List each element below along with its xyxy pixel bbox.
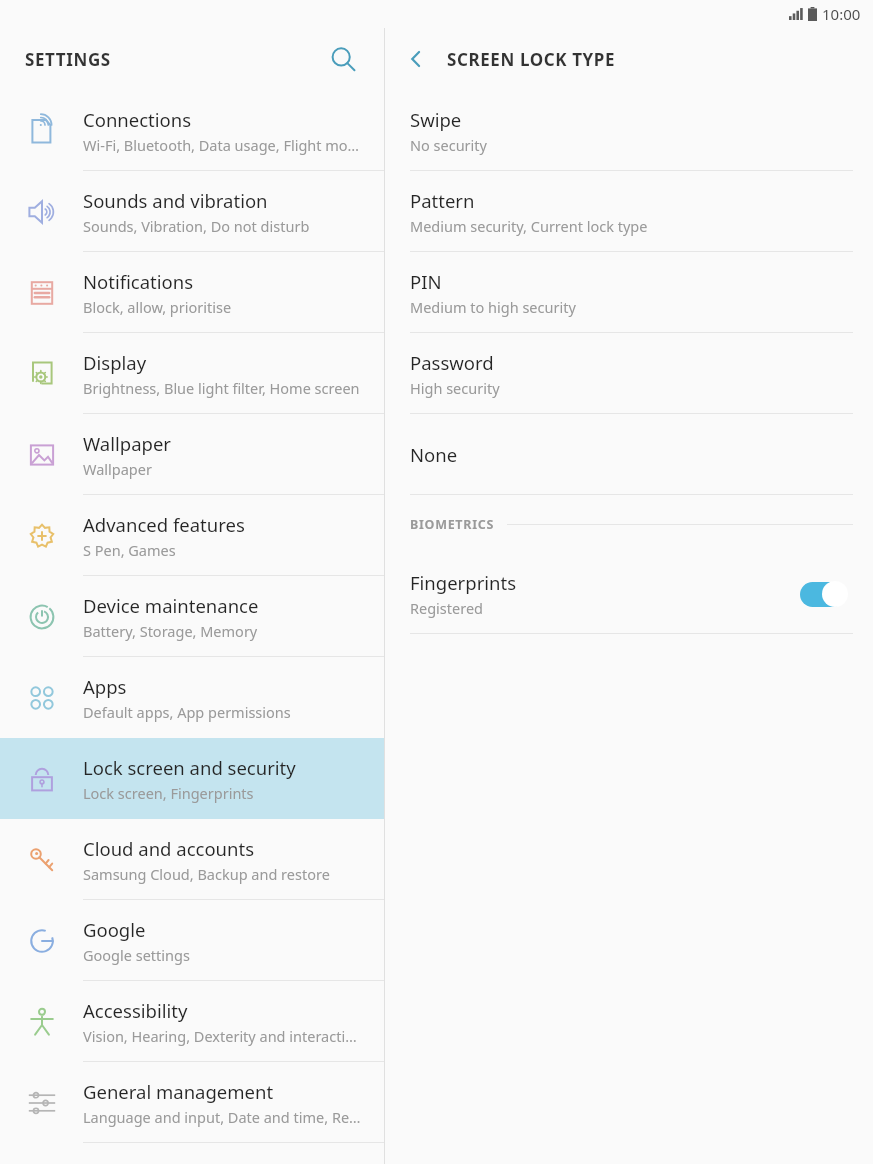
staticText: SETTINGS <box>25 48 111 71</box>
staticText: Cloud and accounts <box>83 836 255 861</box>
button[interactable]: Wallpaper <box>0 414 384 495</box>
staticText: Advanced features <box>83 512 245 537</box>
button[interactable]: General management <box>0 1062 384 1143</box>
button[interactable]: Password <box>385 333 873 414</box>
staticText: Wallpaper <box>83 431 171 456</box>
button[interactable]: Notifications <box>0 252 384 333</box>
staticText: Block, allow, prioritise <box>83 297 232 317</box>
staticText: Password <box>410 350 494 375</box>
staticText: Swipe <box>410 107 462 132</box>
staticText: Connections <box>83 107 192 132</box>
staticText: Wi-Fi, Bluetooth, Data usage, Flight mod… <box>83 135 362 155</box>
button[interactable]: Sounds and vibration <box>0 171 384 252</box>
button[interactable]: Advanced features <box>0 495 384 576</box>
button[interactable]: Fingerprints <box>385 553 873 634</box>
staticText: Vision, Hearing, Dexterity and interacti… <box>83 1026 362 1046</box>
button[interactable]: Device maintenance <box>0 576 384 657</box>
button[interactable]: Google <box>0 900 384 981</box>
staticText: Display <box>83 350 147 375</box>
staticText: PIN <box>410 269 442 294</box>
staticText: Device maintenance <box>83 593 259 618</box>
staticText: Apps <box>83 674 127 699</box>
staticText: Pattern <box>410 188 475 213</box>
staticText: SCREEN LOCK TYPE <box>447 48 616 71</box>
staticText: Lock screen, Fingerprints <box>83 783 254 803</box>
staticText: 10:00 <box>822 4 861 24</box>
staticText: Language and input, Date and time, Res… <box>83 1107 362 1127</box>
button[interactable]: Apps <box>0 657 384 738</box>
staticText: Sounds and vibration <box>83 188 268 213</box>
button[interactable]: Display <box>0 333 384 414</box>
staticText: Lock screen and security <box>83 755 296 780</box>
button[interactable]: None <box>385 414 873 495</box>
staticText: Default apps, App permissions <box>83 702 291 722</box>
staticText: Accessibility <box>83 998 188 1023</box>
staticText: Wallpaper <box>83 459 152 479</box>
staticText: S Pen, Games <box>83 540 176 560</box>
staticText: No security <box>410 135 487 155</box>
staticText: Google settings <box>83 945 190 965</box>
staticText: Fingerprints <box>410 570 517 595</box>
staticText: Registered <box>410 598 484 618</box>
button[interactable]: Cloud and accounts <box>0 819 384 900</box>
staticText: BIOMETRICS <box>410 516 495 533</box>
button[interactable]: Accessibility <box>0 981 384 1062</box>
staticText: Google <box>83 917 146 942</box>
button[interactable]: Pattern <box>385 171 873 252</box>
button[interactable]: PIN <box>385 252 873 333</box>
staticText: Medium to high security <box>410 297 576 317</box>
button[interactable]: Connections <box>0 90 384 171</box>
staticText: Medium security, Current lock type <box>410 216 648 236</box>
button[interactable]: Back <box>385 28 447 90</box>
staticText: High security <box>410 378 500 398</box>
button[interactable]: Lock screen and security <box>0 738 384 819</box>
staticText: Brightness, Blue light filter, Home scre… <box>83 378 360 398</box>
staticText: General management <box>83 1079 274 1104</box>
staticText: Notifications <box>83 269 194 294</box>
button[interactable]: Swipe <box>385 90 873 171</box>
staticText: Sounds, Vibration, Do not disturb <box>83 216 310 236</box>
staticText: Samsung Cloud, Backup and restore <box>83 864 330 884</box>
staticText: Battery, Storage, Memory <box>83 621 258 641</box>
staticText: None <box>410 442 458 467</box>
button[interactable]: Search <box>322 38 364 80</box>
